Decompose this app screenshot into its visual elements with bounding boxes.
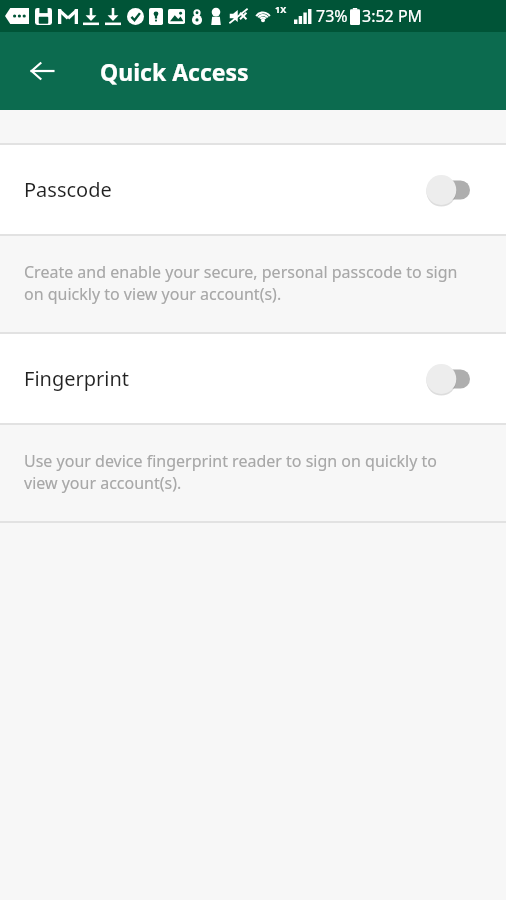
staticText: Fingerprint — [24, 365, 130, 392]
staticText: 1X — [275, 3, 287, 15]
button[interactable]: Fingerprint — [0, 334, 506, 423]
staticText: 3:52 PM — [362, 5, 423, 27]
staticText: Use your device fingerprint reader to si… — [24, 450, 470, 494]
staticText: Passcode — [24, 176, 112, 203]
button[interactable]: Passcode — [0, 145, 506, 234]
button[interactable]: Back — [20, 49, 64, 93]
button[interactable]: Toggle — [418, 359, 476, 399]
staticText: Quick Access — [100, 56, 249, 87]
staticText: Create and enable your secure, personal … — [24, 261, 470, 305]
staticText: 73% — [316, 5, 348, 27]
button[interactable]: Toggle — [418, 170, 476, 210]
